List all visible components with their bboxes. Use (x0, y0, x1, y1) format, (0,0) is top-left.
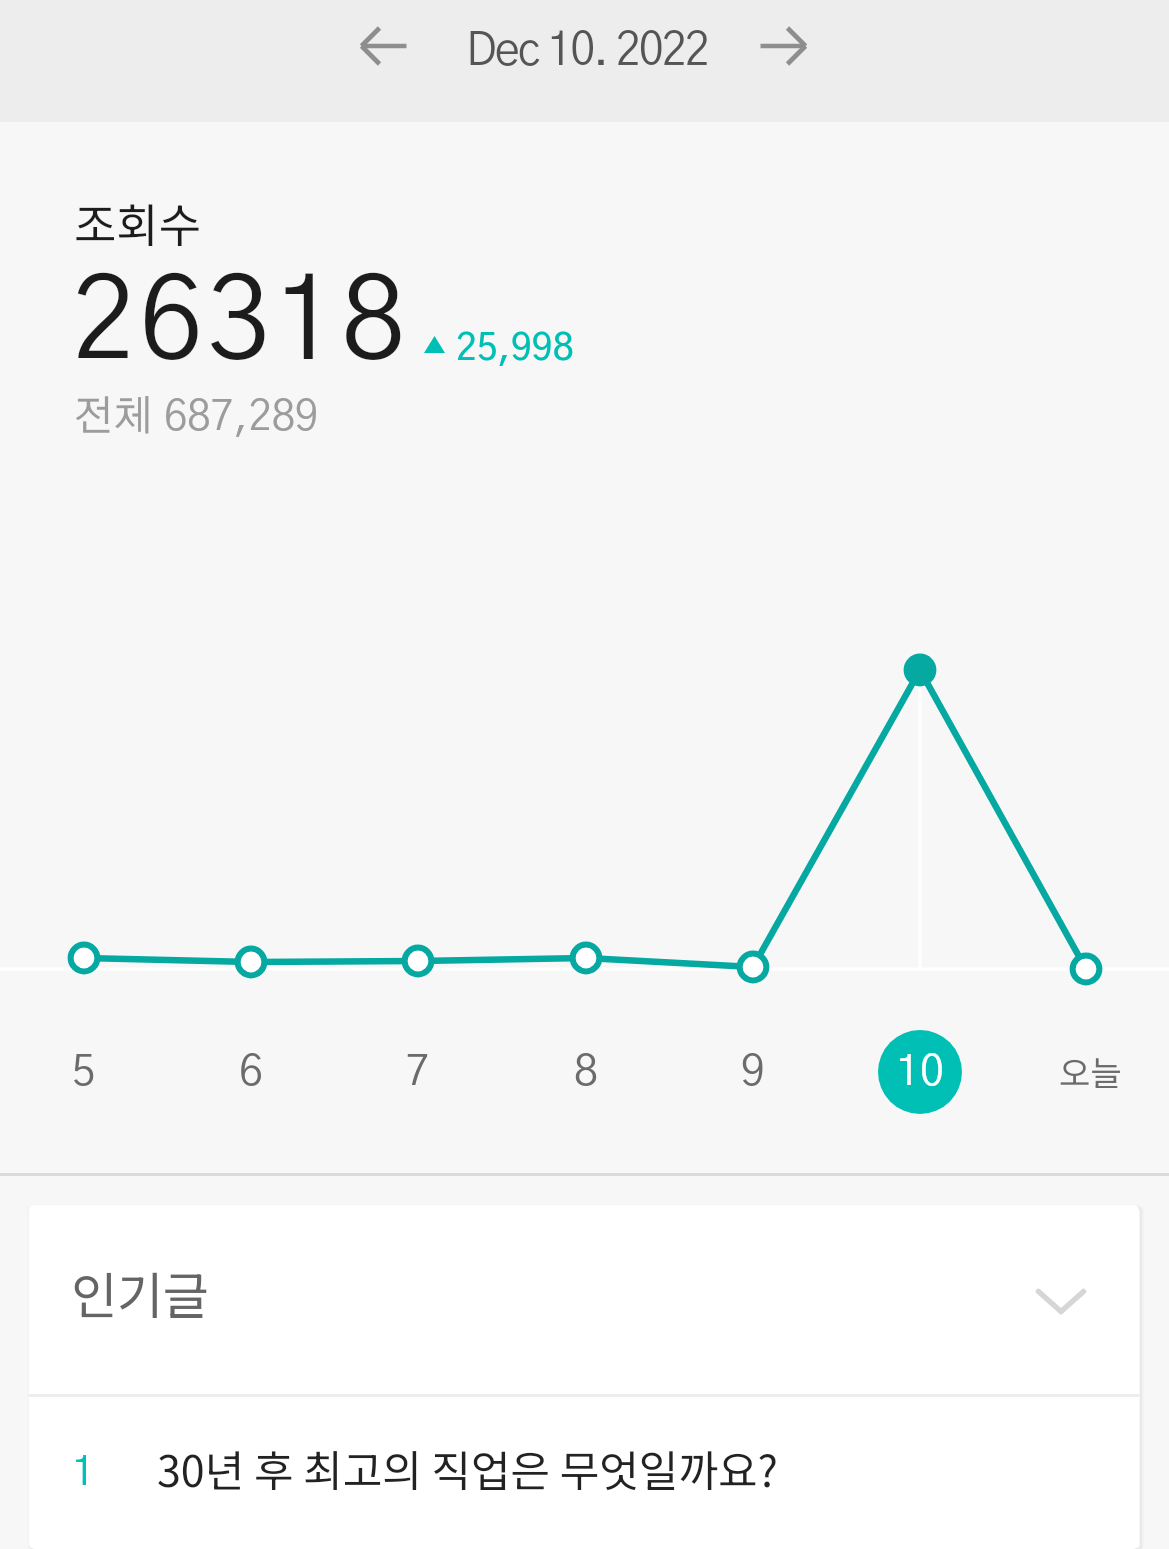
staticText: 8 (574, 1051, 598, 1094)
staticText: 10 (896, 1051, 944, 1094)
staticText: 9 (741, 1051, 765, 1094)
button[interactable]: 5 (42, 1030, 126, 1114)
staticText: 전체 687,289 (73, 396, 319, 438)
staticText: Dec 10. 2022 (466, 29, 708, 74)
staticText: 인기글 (71, 1256, 209, 1328)
button[interactable]: 6 (209, 1030, 293, 1114)
button[interactable]: 9 (711, 1030, 795, 1114)
button[interactable]: 8 (544, 1030, 628, 1114)
button[interactable]: Collapse 인기글 (1013, 1253, 1109, 1349)
staticText: 30년 후 최고의 직업은 무엇일까요? (157, 1437, 778, 1499)
button[interactable]: 7 (376, 1030, 460, 1114)
staticText: 6 (239, 1051, 263, 1094)
staticText: 조회수 (74, 189, 201, 256)
button[interactable]: 인기글 (29, 1205, 1139, 1394)
staticText: 5 (72, 1051, 96, 1094)
button[interactable]: 오늘 (1048, 1029, 1132, 1113)
button[interactable]: Next day (735, 0, 831, 92)
button[interactable]: Previous day (336, 0, 432, 92)
staticText: 26318 (72, 267, 409, 381)
staticText: 7 (406, 1051, 430, 1094)
staticText: 1 (72, 1452, 95, 1493)
button[interactable]: 10 (878, 1030, 962, 1114)
staticText: 25,998 (456, 330, 574, 367)
staticText: 오늘 (1059, 1047, 1122, 1096)
button[interactable]: 1 (29, 1397, 1139, 1549)
